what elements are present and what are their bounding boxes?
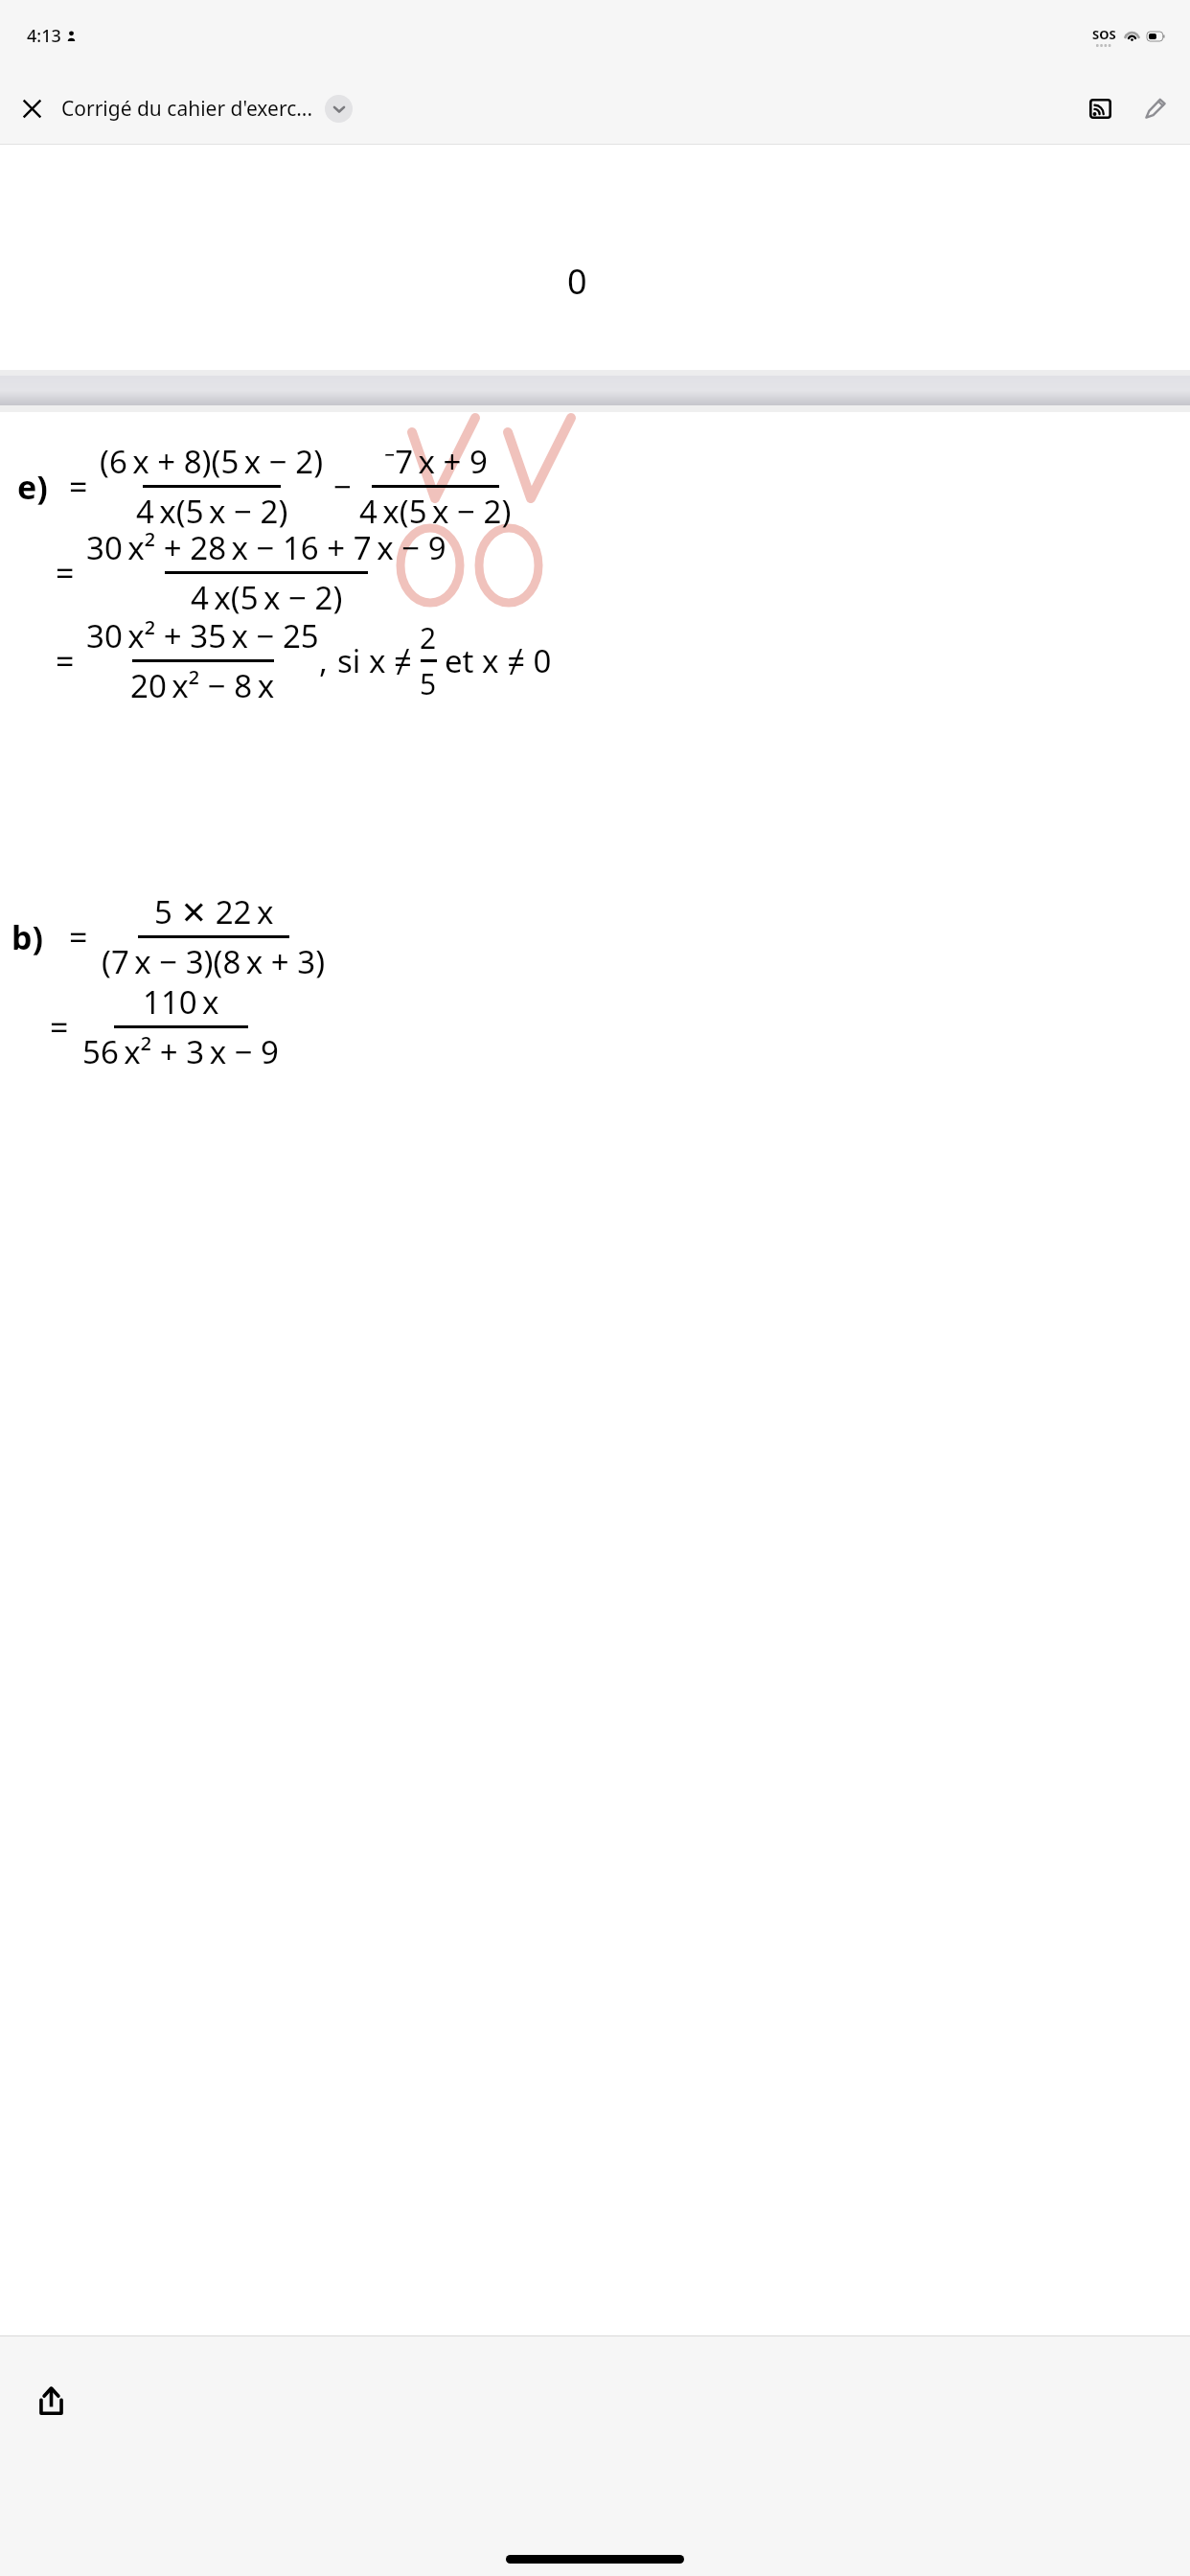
staticText: (7 x − 3)(8 x + 3)	[102, 940, 326, 983]
staticText: −	[333, 465, 352, 508]
staticText: 30 x² + 28 x − 16 + 7 x − 9	[86, 526, 446, 569]
staticText: 30 x² + 35 x − 25	[86, 614, 319, 657]
staticText: e)	[17, 465, 48, 509]
button[interactable]: Close	[10, 86, 54, 130]
button[interactable]: Share	[21, 2372, 80, 2431]
staticText: 2	[420, 618, 437, 657]
staticText: (6 x + 8)(5 x − 2)	[100, 440, 324, 483]
button[interactable]: Expand	[325, 95, 353, 123]
staticText: ,	[319, 639, 328, 682]
staticText: 5 ✕ 22 x	[154, 890, 274, 933]
staticText: 4:13	[27, 24, 61, 48]
staticText: 110 x	[143, 980, 219, 1023]
staticText: =	[56, 551, 75, 595]
staticText: =	[50, 1005, 69, 1049]
staticText: =	[69, 915, 88, 959]
staticText: 4 x(5 x − 2)	[136, 490, 288, 533]
button[interactable]: Cast	[1077, 85, 1123, 131]
staticText: =	[56, 639, 75, 683]
staticText: 20 x² − 8 x	[130, 664, 275, 707]
staticText: 5	[420, 664, 437, 703]
button[interactable]: Edit	[1133, 85, 1179, 131]
staticText: 4 x(5 x − 2)	[191, 576, 343, 619]
staticText: =	[69, 465, 88, 509]
staticText: 56 x² + 3 x − 9	[82, 1030, 279, 1073]
staticText: ⁻7 x + 9	[384, 440, 488, 483]
staticText: et x ≠ 0	[445, 639, 552, 682]
staticText: 4 x(5 x − 2)	[359, 490, 512, 533]
staticText: 0	[567, 258, 587, 305]
button[interactable]: Corrigé du cahier d'exerc...	[61, 95, 313, 123]
staticText: b)	[11, 915, 44, 959]
staticText: si x ≠	[337, 639, 412, 682]
staticText: SOS	[1092, 26, 1116, 43]
